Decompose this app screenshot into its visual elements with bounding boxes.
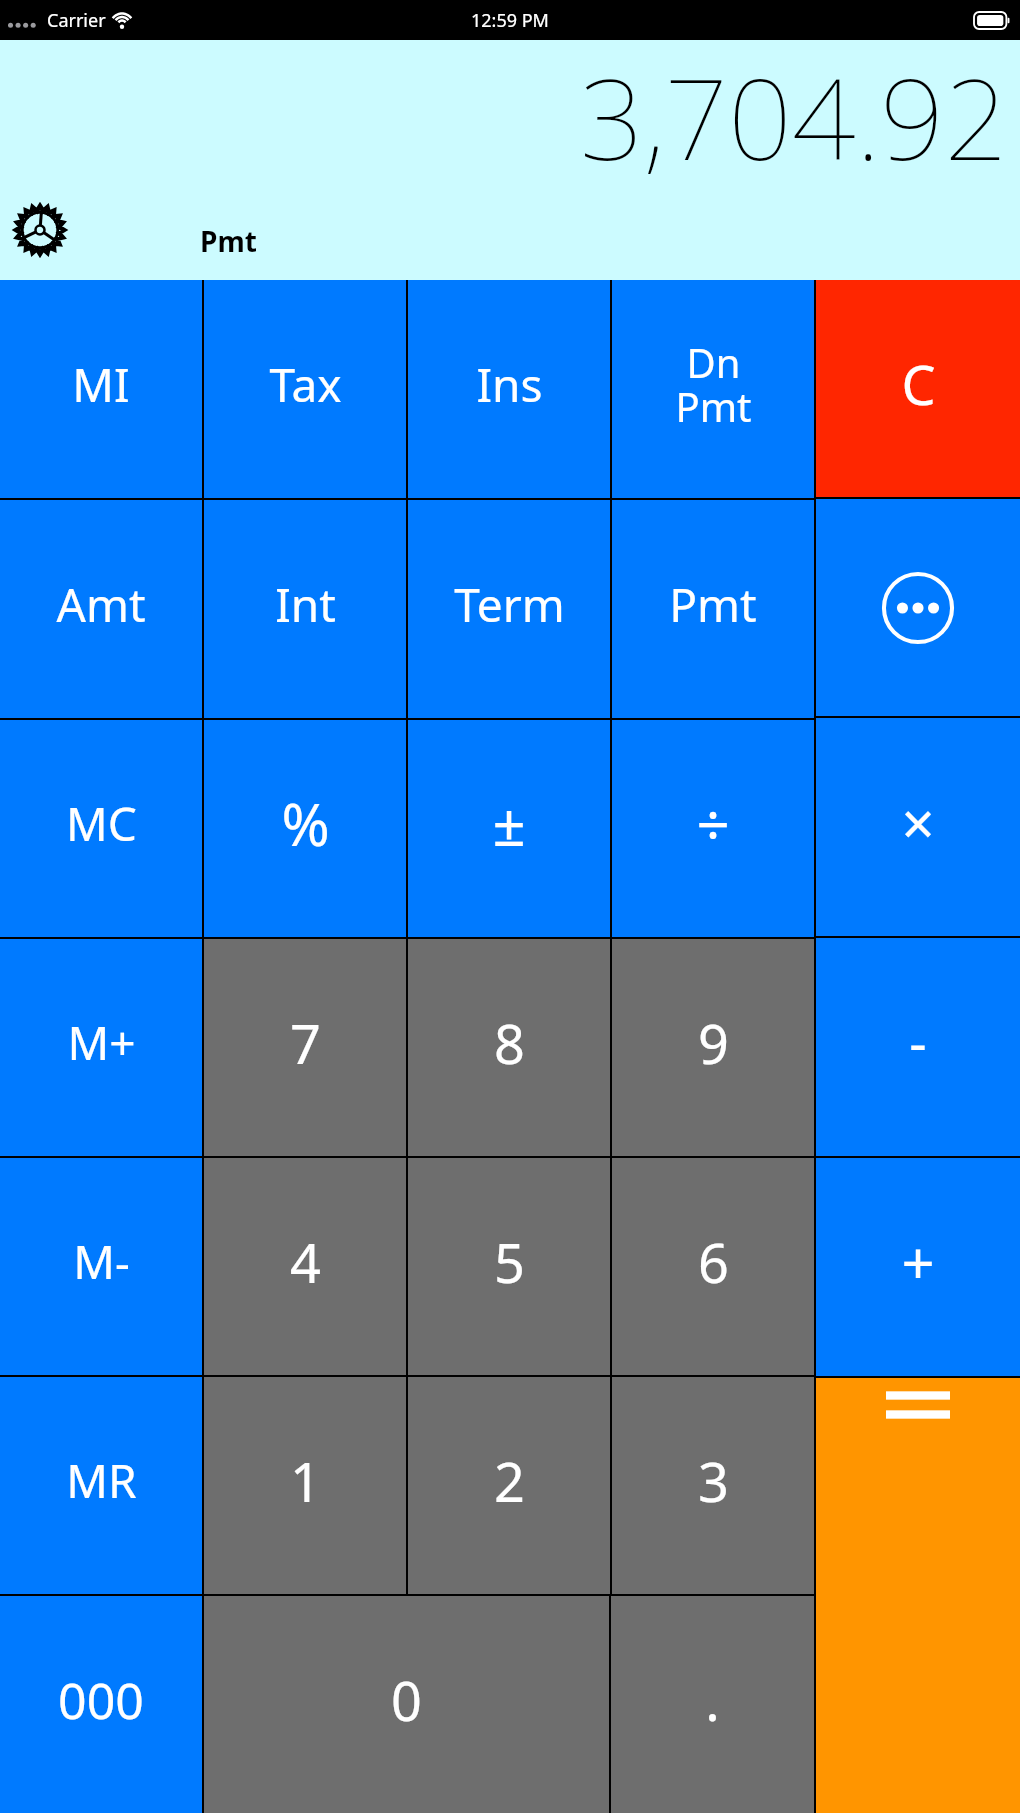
staticText: 7 bbox=[290, 1006, 321, 1080]
staticText: × bbox=[901, 783, 935, 862]
button[interactable]: Equals bbox=[816, 1378, 1020, 1813]
button[interactable]: 2 bbox=[408, 1377, 610, 1594]
button[interactable]: 1 bbox=[204, 1377, 406, 1594]
button[interactable]: % bbox=[204, 720, 406, 937]
button[interactable]: Dn Pmt bbox=[612, 280, 814, 498]
staticText: - bbox=[909, 1005, 927, 1079]
staticText: 9 bbox=[698, 1006, 729, 1080]
button[interactable]: Term bbox=[408, 500, 610, 718]
staticText: 000 bbox=[58, 1666, 144, 1734]
button[interactable]: 3 bbox=[612, 1377, 814, 1594]
button[interactable]: MR bbox=[0, 1377, 202, 1594]
button[interactable]: ± bbox=[408, 720, 610, 937]
staticText: 3,704.92 bbox=[579, 40, 1008, 193]
button[interactable]: 7 bbox=[204, 939, 406, 1156]
staticText: 2 bbox=[494, 1444, 525, 1518]
staticText: ± bbox=[492, 784, 526, 863]
staticText: 6 bbox=[698, 1225, 729, 1299]
staticText: 1 bbox=[290, 1444, 321, 1518]
button[interactable]: Ins bbox=[408, 280, 610, 498]
staticText: Pmt bbox=[669, 573, 757, 636]
staticText: . bbox=[705, 1663, 720, 1737]
button[interactable]: + bbox=[816, 1158, 1020, 1376]
staticText: 0 bbox=[391, 1663, 422, 1737]
button[interactable]: More options bbox=[816, 499, 1020, 716]
button[interactable]: Pmt bbox=[612, 500, 814, 718]
button[interactable]: 8 bbox=[408, 939, 610, 1156]
staticText: Ins bbox=[476, 353, 543, 416]
button[interactable]: Amt bbox=[0, 500, 202, 718]
button[interactable]: 0 bbox=[204, 1596, 609, 1813]
button[interactable]: × bbox=[816, 718, 1020, 936]
staticText: Tax bbox=[269, 353, 342, 416]
button[interactable]: MC bbox=[0, 720, 202, 937]
button[interactable]: MI bbox=[0, 280, 202, 498]
button[interactable]: . bbox=[611, 1596, 814, 1813]
staticText: Term bbox=[454, 573, 565, 636]
staticText: 5 bbox=[494, 1225, 525, 1299]
staticText: + bbox=[901, 1223, 935, 1302]
button[interactable]: 6 bbox=[612, 1158, 814, 1375]
staticText: Int bbox=[275, 573, 336, 636]
staticText: % bbox=[281, 784, 330, 863]
staticText: 4 bbox=[290, 1225, 321, 1299]
button[interactable]: M+ bbox=[0, 939, 202, 1156]
staticText: Carrier bbox=[47, 8, 106, 33]
staticText: M+ bbox=[67, 1011, 136, 1074]
button[interactable]: 9 bbox=[612, 939, 814, 1156]
button[interactable]: M- bbox=[0, 1158, 202, 1375]
staticText: Pmt bbox=[200, 222, 257, 260]
staticText: 8 bbox=[494, 1006, 525, 1080]
button[interactable]: 4 bbox=[204, 1158, 406, 1375]
staticText: MC bbox=[66, 792, 137, 855]
button[interactable]: - bbox=[816, 938, 1020, 1156]
button[interactable]: 5 bbox=[408, 1158, 610, 1375]
staticText: MR bbox=[66, 1449, 137, 1512]
button[interactable]: Tax bbox=[204, 280, 406, 498]
staticText: Amt bbox=[56, 573, 146, 636]
staticText: C bbox=[901, 347, 936, 421]
staticText: Dn Pmt bbox=[675, 335, 752, 434]
staticText: 12:59 PM bbox=[471, 8, 549, 33]
button[interactable]: C bbox=[816, 280, 1020, 497]
button[interactable]: Int bbox=[204, 500, 406, 718]
button[interactable]: 000 bbox=[0, 1596, 202, 1813]
staticText: ÷ bbox=[696, 784, 730, 863]
button[interactable]: ÷ bbox=[612, 720, 814, 937]
staticText: MI bbox=[72, 353, 130, 416]
button[interactable]: Settings bbox=[12, 202, 68, 258]
staticText: M- bbox=[73, 1230, 130, 1293]
staticText: 3 bbox=[698, 1444, 729, 1518]
